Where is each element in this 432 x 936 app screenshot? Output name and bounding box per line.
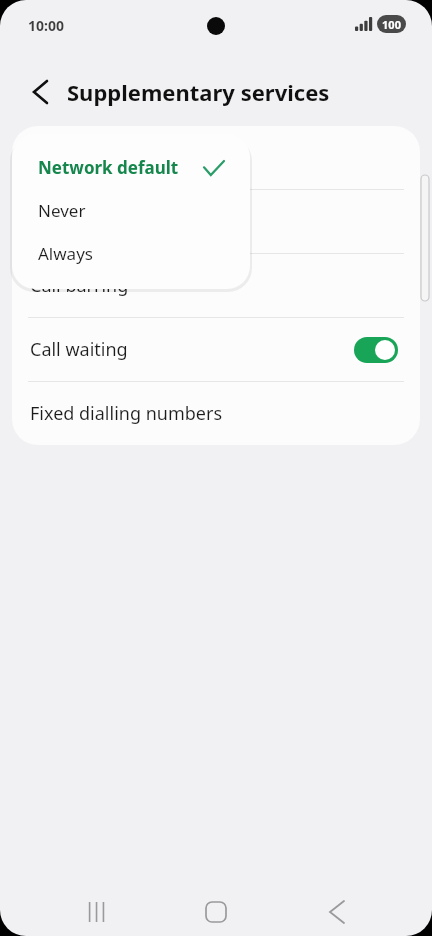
staticText: Call waiting: [30, 337, 354, 362]
staticText: Never: [38, 199, 204, 222]
button[interactable]: Call barring: [12, 254, 420, 317]
button[interactable]: Always: [12, 232, 250, 275]
button[interactable]: Home: [192, 888, 240, 936]
staticText: Fixed dialling numbers: [30, 401, 223, 426]
staticText: Network default: [38, 156, 204, 179]
other: Call waiting toggle: [354, 337, 398, 363]
button[interactable]: [12, 126, 420, 189]
button[interactable]: Recent apps: [73, 888, 121, 936]
staticText: Supplementary services: [67, 77, 330, 107]
button[interactable]: Back: [20, 72, 60, 112]
staticText: Always: [38, 242, 204, 265]
button[interactable]: Network default: [12, 146, 250, 189]
staticText: 10:00: [28, 16, 64, 35]
staticText: Call barring: [30, 273, 129, 298]
button[interactable]: Fixed dialling numbers: [12, 382, 420, 445]
staticText: 100: [382, 17, 401, 32]
button[interactable]: [12, 190, 420, 253]
button[interactable]: Back: [313, 888, 361, 936]
button[interactable]: Never: [12, 189, 250, 232]
button[interactable]: Call waiting: [12, 318, 420, 381]
